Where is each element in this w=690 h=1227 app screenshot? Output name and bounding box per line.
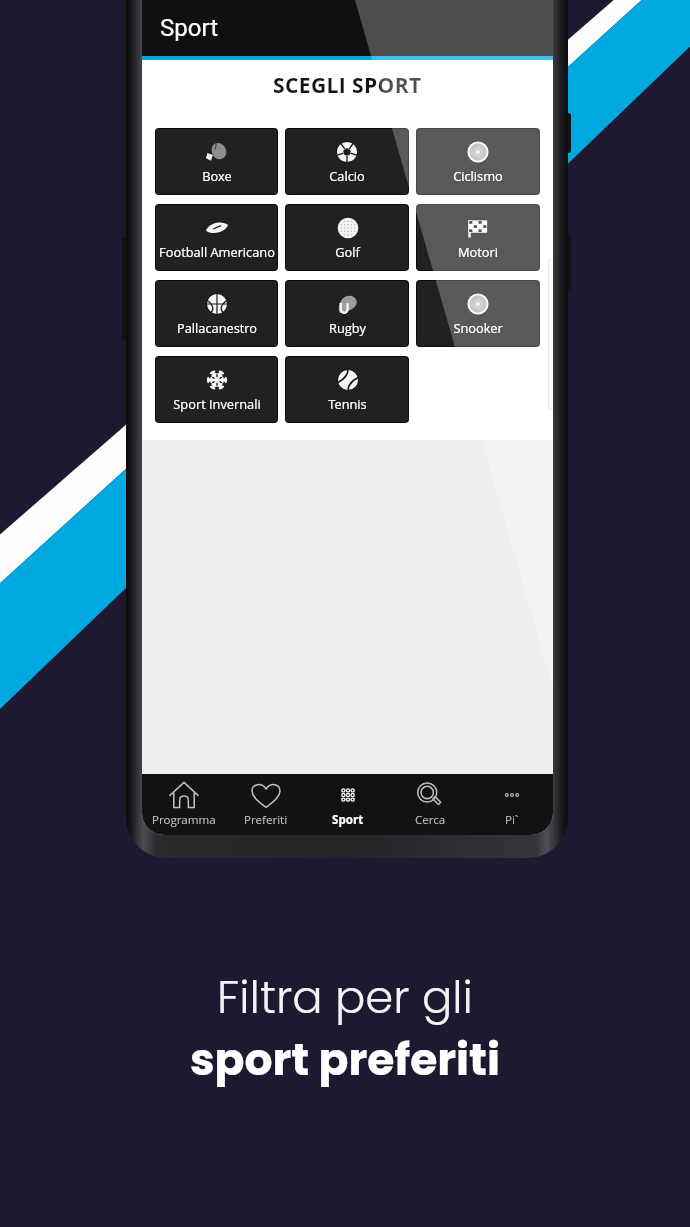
staticText: Sport: [332, 812, 364, 828]
button[interactable]: Cerca: [389, 774, 471, 828]
staticText: Rugby: [329, 319, 366, 336]
button[interactable]: Football Americano: [156, 205, 277, 270]
button[interactable]: Più: [471, 774, 553, 828]
button[interactable]: Sport: [307, 774, 389, 828]
button[interactable]: Ciclismo: [417, 129, 539, 194]
staticText: Preferiti: [244, 812, 288, 828]
staticText: SCEGLI SPORT: [273, 71, 422, 100]
staticText: Cerca: [415, 812, 446, 828]
button[interactable]: Pallacanestro: [156, 281, 277, 346]
staticText: Football Americano: [159, 243, 275, 260]
button[interactable]: Programma: [142, 774, 225, 828]
staticText: Ciclismo: [453, 167, 503, 184]
staticText: sport preferiti: [190, 1029, 500, 1091]
staticText: Sport Invernali: [173, 395, 261, 412]
staticText: Tennis: [328, 395, 367, 412]
staticText: Sport: [160, 14, 218, 42]
staticText: Snooker: [453, 319, 503, 336]
staticText: Programma: [152, 812, 216, 828]
button[interactable]: Tennis: [286, 357, 408, 422]
staticText: Golf: [335, 243, 360, 260]
staticText: Calcio: [329, 167, 365, 184]
staticText: Boxe: [202, 167, 232, 184]
staticText: Piˋ: [505, 812, 519, 828]
button[interactable]: Motori: [417, 205, 539, 270]
button[interactable]: Snooker: [417, 281, 539, 346]
button[interactable]: Calcio: [286, 129, 408, 194]
button[interactable]: Boxe: [156, 129, 277, 194]
button[interactable]: Rugby: [286, 281, 408, 346]
button[interactable]: Preferiti: [225, 774, 307, 828]
staticText: Motori: [458, 243, 498, 260]
button[interactable]: Golf: [286, 205, 408, 270]
button[interactable]: Sport Invernali: [156, 357, 277, 422]
staticText: Pallacanestro: [177, 319, 257, 336]
staticText: Filtra per gli: [217, 966, 473, 1029]
